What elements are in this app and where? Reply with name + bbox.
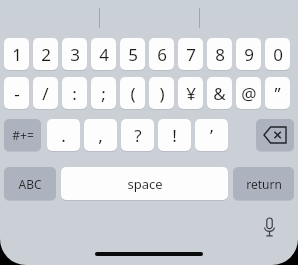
button[interactable]: & (207, 77, 232, 109)
staticText: 4 (99, 43, 109, 66)
button[interactable]: #+= (4, 119, 41, 151)
staticText: - (14, 82, 20, 105)
button[interactable]: ( (120, 77, 145, 109)
button[interactable]: . (47, 119, 80, 151)
button[interactable]: 9 (236, 38, 261, 70)
button[interactable]: ¥ (178, 77, 203, 109)
button[interactable]: 1 (4, 38, 29, 70)
staticText: ” (274, 82, 281, 105)
staticText: 3 (70, 43, 80, 66)
staticText: ! (172, 124, 177, 147)
staticText: #+= (12, 127, 34, 143)
staticText: ¥ (186, 82, 196, 105)
staticText: . (61, 124, 66, 147)
staticText: & (213, 82, 226, 105)
button[interactable]: space (61, 167, 228, 200)
staticText: 9 (244, 43, 254, 66)
button[interactable]: 6 (149, 38, 174, 70)
staticText: ( (130, 82, 136, 105)
button[interactable]: - (4, 77, 29, 109)
staticText: : (72, 82, 77, 105)
button[interactable]: Backspace (256, 119, 294, 151)
staticText: ) (159, 82, 165, 105)
staticText: ? (134, 124, 142, 147)
button[interactable]: ! (158, 119, 191, 151)
button[interactable]: ’ (195, 119, 228, 151)
button[interactable]: / (33, 77, 58, 109)
button[interactable]: ABC (4, 167, 56, 200)
staticText: 2 (41, 43, 51, 66)
button[interactable]: 4 (91, 38, 116, 70)
button[interactable]: ) (149, 77, 174, 109)
staticText: ; (101, 82, 106, 105)
staticText: space (127, 175, 163, 193)
button[interactable]: : (62, 77, 87, 109)
button[interactable]: 3 (62, 38, 87, 70)
staticText: , (98, 124, 103, 147)
button[interactable]: ” (265, 77, 290, 109)
button[interactable]: , (84, 119, 117, 151)
staticText: 1 (12, 43, 22, 66)
staticText: 0 (273, 43, 283, 66)
button[interactable]: @ (236, 77, 261, 109)
staticText: 7 (186, 43, 196, 66)
staticText: / (42, 82, 49, 105)
staticText: 8 (215, 43, 225, 66)
button[interactable]: 5 (120, 38, 145, 70)
button[interactable]: 2 (33, 38, 58, 70)
button[interactable]: 0 (265, 38, 290, 70)
staticText: 5 (128, 43, 138, 66)
button[interactable]: Dictation (252, 212, 286, 242)
button[interactable]: ; (91, 77, 116, 109)
button[interactable]: return (233, 167, 294, 200)
staticText: ’ (210, 124, 213, 147)
staticText: return (246, 176, 282, 192)
staticText: @ (241, 82, 257, 105)
button[interactable]: 8 (207, 38, 232, 70)
staticText: ABC (18, 176, 42, 192)
staticText: 6 (157, 43, 167, 66)
button[interactable]: ? (121, 119, 154, 151)
button[interactable]: 7 (178, 38, 203, 70)
